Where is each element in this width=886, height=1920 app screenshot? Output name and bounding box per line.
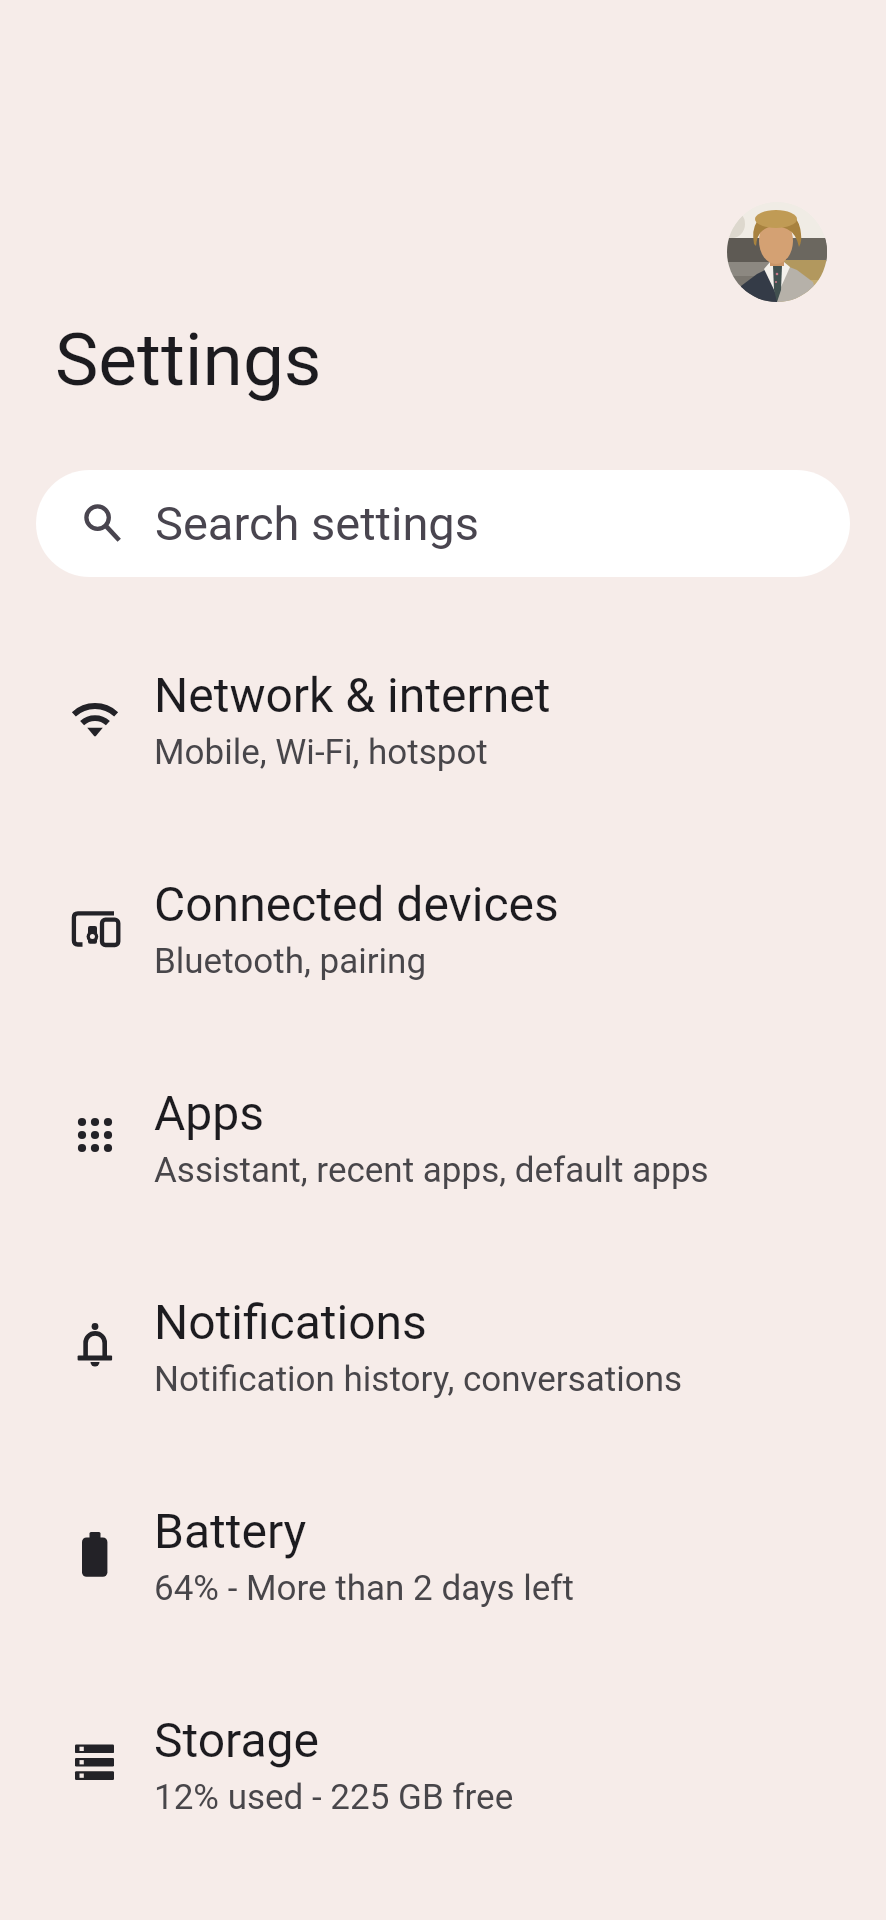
staticText: 64% - More than 2 days left <box>154 1568 574 1609</box>
button[interactable] <box>727 202 827 302</box>
staticText: Mobile, Wi-Fi, hotspot <box>154 732 488 773</box>
button[interactable]: Apps <box>0 1030 886 1239</box>
staticText: Connected devices <box>154 876 559 932</box>
button[interactable]: Connected devices <box>0 821 886 1030</box>
button[interactable]: Battery <box>0 1448 886 1657</box>
button[interactable]: Storage <box>0 1657 886 1866</box>
staticText: Search settings <box>155 496 479 551</box>
staticText: Notifications <box>154 1294 427 1350</box>
staticText: 12% used - 225 GB free <box>154 1777 514 1818</box>
staticText: Battery <box>154 1503 307 1559</box>
staticText: Apps <box>154 1085 264 1141</box>
button[interactable]: Search settings <box>36 470 850 577</box>
button[interactable]: Notifications <box>0 1239 886 1448</box>
staticText: Assistant, recent apps, default apps <box>154 1150 709 1191</box>
staticText: Notification history, conversations <box>154 1359 683 1400</box>
staticText: Storage <box>154 1712 319 1768</box>
staticText: Network & internet <box>154 667 551 723</box>
staticText: Bluetooth, pairing <box>154 941 427 982</box>
staticText: Settings <box>55 317 322 403</box>
button[interactable]: Network & internet <box>0 612 886 821</box>
